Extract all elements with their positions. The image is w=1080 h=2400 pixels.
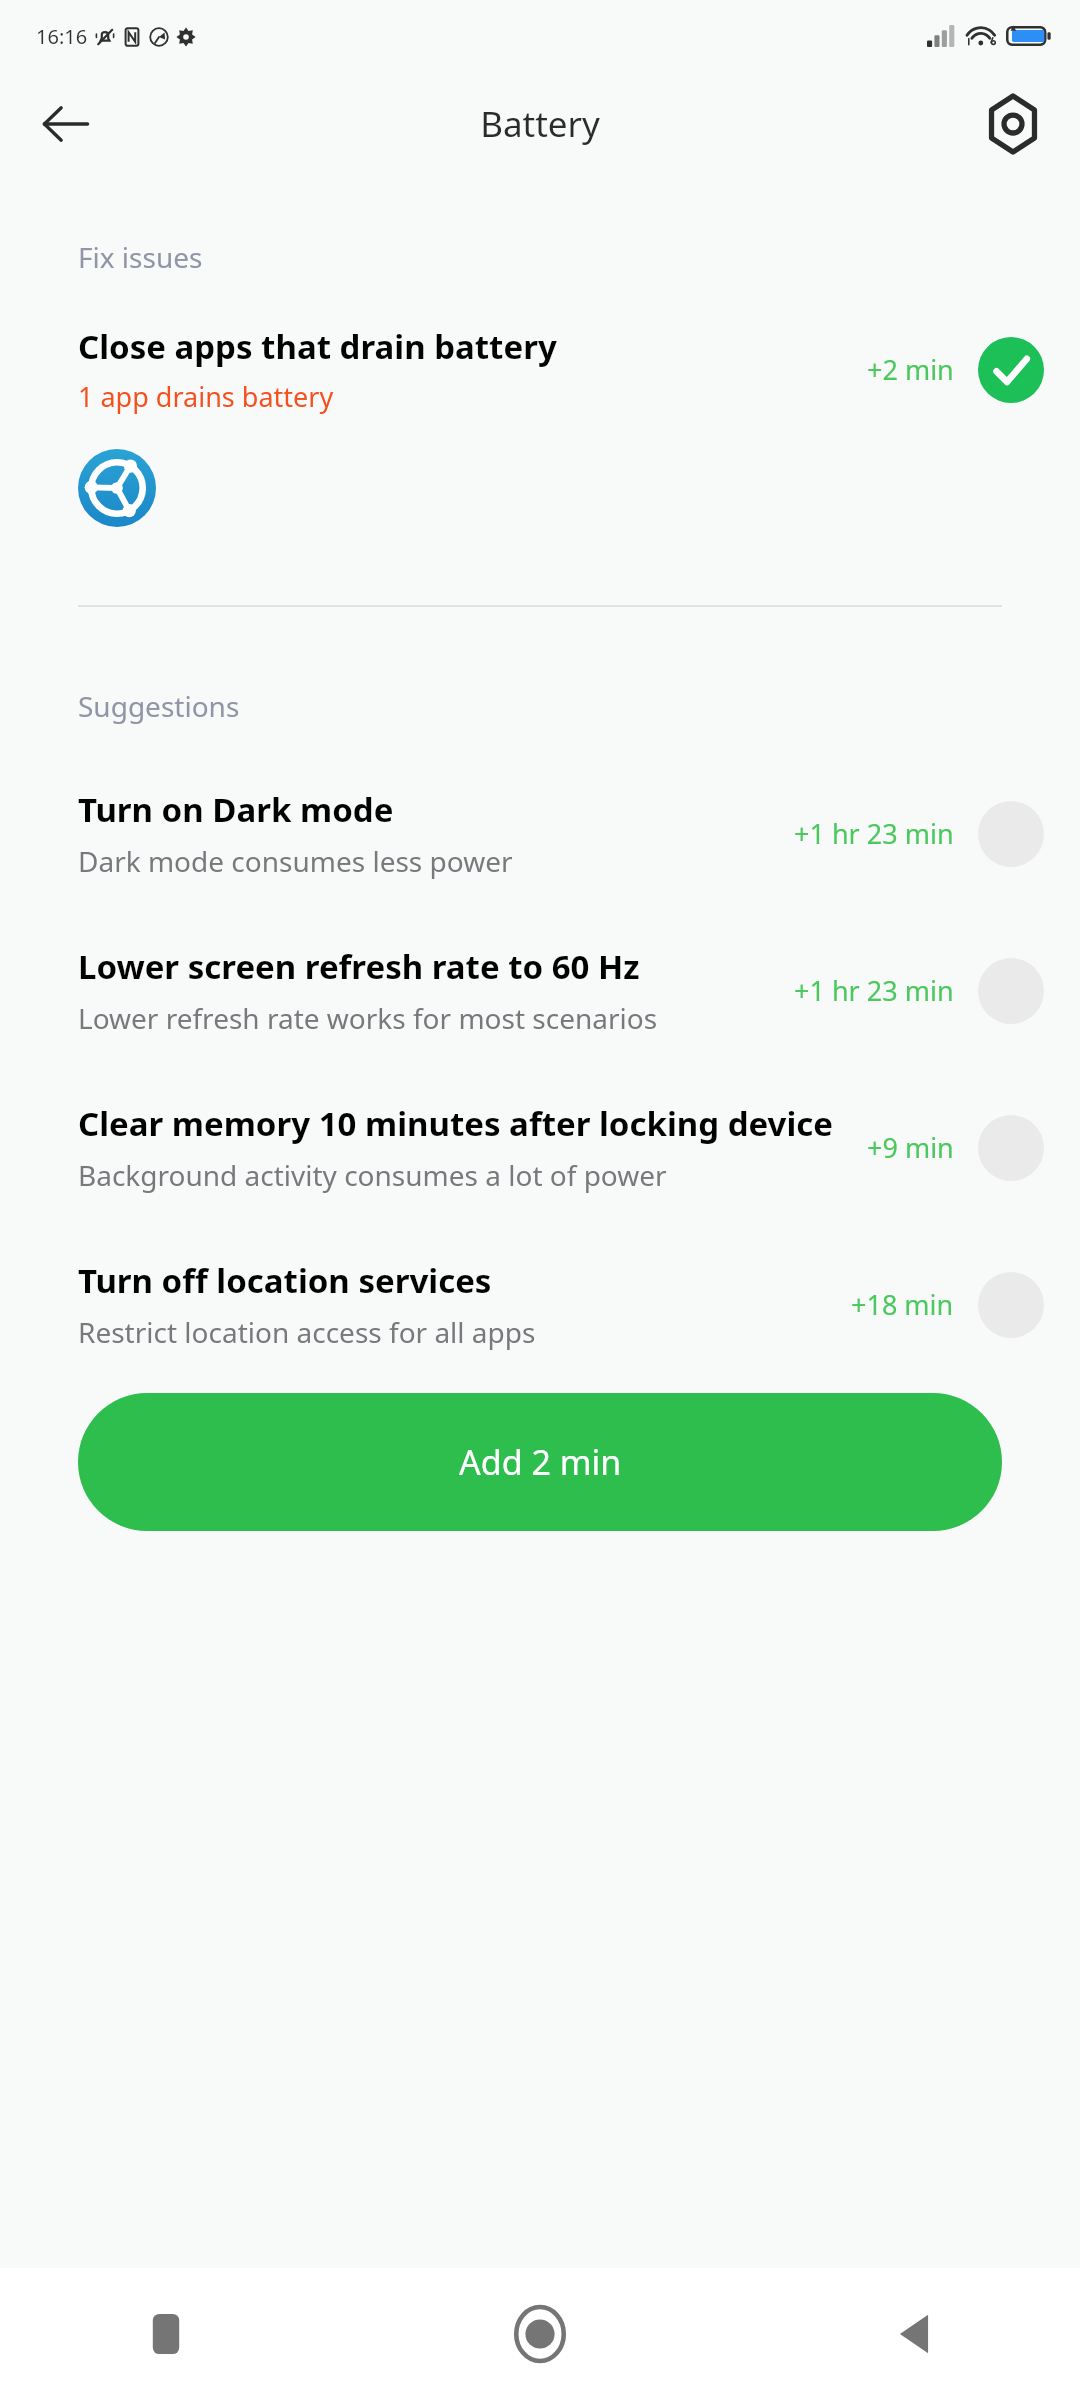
button[interactable]: Add 2 min <box>78 1393 1002 1531</box>
button[interactable]: Toggle Turn off location services <box>978 1272 1044 1338</box>
button[interactable]: Turn off location services <box>0 1258 1080 1351</box>
button[interactable]: Turn on Dark mode <box>0 787 1080 880</box>
staticText: Restrict location access for all apps <box>78 1313 536 1351</box>
staticText: +1 hr 23 min <box>794 972 954 1009</box>
staticText: +2 min <box>867 351 954 388</box>
button[interactable]: Home <box>494 2288 586 2380</box>
staticText: Close apps that drain battery <box>78 324 557 369</box>
staticText: Suggestions <box>78 687 240 725</box>
staticText: Lower refresh rate works for most scenar… <box>78 999 658 1037</box>
staticText: +18 min <box>851 1286 954 1323</box>
staticText: 16:16 <box>36 23 88 50</box>
staticText: Background activity consumes a lot of po… <box>78 1156 667 1194</box>
staticText: +1 hr 23 min <box>794 815 954 852</box>
staticText: Fix issues <box>78 238 203 276</box>
button[interactable]: Close apps that drain battery <box>0 324 1080 415</box>
staticText: Add 2 min <box>459 1439 622 1485</box>
staticText: +9 min <box>867 1129 954 1166</box>
staticText: Clear memory 10 minutes after locking de… <box>78 1101 834 1146</box>
button[interactable]: Toggle Clear memory 10 minutes after loc… <box>978 1115 1044 1181</box>
staticText: 1 app drains battery <box>78 378 334 415</box>
button[interactable]: Settings <box>982 93 1044 155</box>
staticText: Turn on Dark mode <box>78 787 394 832</box>
button[interactable]: Toggle Lower screen refresh rate to 60 H… <box>978 958 1044 1024</box>
staticText: Battery <box>480 100 600 148</box>
staticText: Dark mode consumes less power <box>78 842 513 880</box>
staticText: Turn off location services <box>78 1258 492 1303</box>
staticText: Lower screen refresh rate to 60 Hz <box>78 944 640 989</box>
button[interactable]: Lower screen refresh rate to 60 Hz <box>0 944 1080 1037</box>
button[interactable]: Toggle Turn on Dark mode <box>978 801 1044 867</box>
button[interactable]: Back <box>36 94 96 154</box>
button[interactable]: Clear memory 10 minutes after locking de… <box>0 1101 1080 1194</box>
button[interactable]: Recent apps <box>120 2288 212 2380</box>
button[interactable]: Back <box>868 2288 960 2380</box>
